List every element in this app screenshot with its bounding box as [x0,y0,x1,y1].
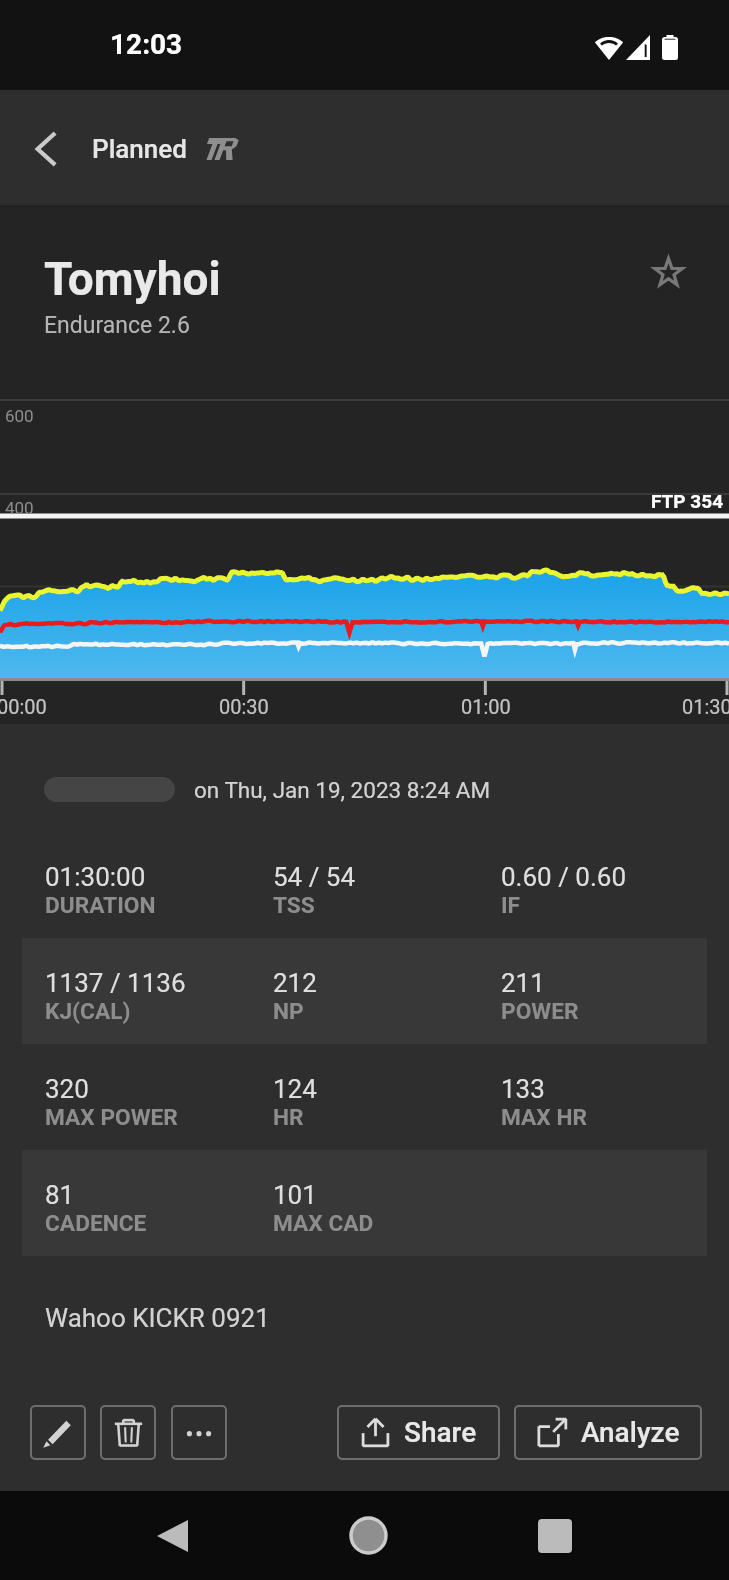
staticText: 00:30 [219,695,269,718]
staticText: FTP 354 [651,490,724,512]
button[interactable]: Back [0,90,92,207]
staticText: 1137 / 1136 [45,968,186,998]
staticText: 600 [5,406,34,426]
staticText: Share [404,1416,477,1449]
button[interactable]: Recent apps [515,1491,595,1580]
button[interactable]: Analyze [514,1405,702,1460]
staticText: 124 [273,1074,317,1104]
staticText: 12:03 [110,28,183,61]
staticText: 01:00 [461,695,511,718]
staticText: 01:30 [682,695,729,718]
button[interactable]: More options [171,1405,227,1460]
staticText: 400 [5,498,34,518]
staticText: 101 [273,1180,317,1210]
staticText: 211 [501,968,545,998]
staticText: IF [501,892,521,919]
staticText: 81 [45,1180,75,1210]
staticText: MAX POWER [45,1104,178,1131]
staticText: Wahoo KICKR 0921 [45,1303,270,1333]
staticText: 212 [273,968,317,998]
staticText: Planned [92,134,187,164]
staticText: 00:00 [0,695,47,718]
staticText: Analyze [581,1416,680,1449]
staticText: 0.60 / 0.60 [501,862,627,892]
staticText: KJ(CAL) [45,998,131,1025]
staticText: TSS [273,892,315,919]
staticText: 320 [45,1074,89,1104]
staticText: on Thu, Jan 19, 2023 8:24 AM [194,777,491,803]
staticText: MAX CAD [273,1210,374,1237]
staticText: 54 / 54 [273,862,356,892]
button[interactable]: Delete [100,1405,156,1460]
button[interactable]: Back [132,1491,212,1580]
staticText: Tomyhoi [44,252,221,306]
staticText: NP [273,998,304,1025]
staticText: DURATION [45,892,156,919]
button[interactable]: Edit [30,1405,86,1460]
button[interactable]: Favorite [638,241,698,301]
staticText: MAX HR [501,1104,587,1131]
staticText: HR [273,1104,304,1131]
staticText: 01:30:00 [45,862,146,892]
button[interactable]: Home [328,1491,408,1580]
button[interactable]: Share [337,1405,500,1460]
staticText: CADENCE [45,1210,147,1237]
staticText: 133 [501,1074,545,1104]
staticText: Endurance 2.6 [44,312,190,339]
staticText: POWER [501,998,579,1025]
